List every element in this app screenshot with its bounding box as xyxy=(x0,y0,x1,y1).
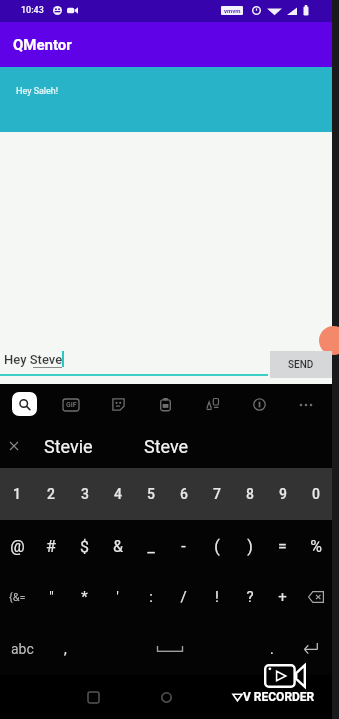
staticText: abc xyxy=(11,641,34,657)
button[interactable]: 2 xyxy=(34,468,68,520)
button[interactable]: ! xyxy=(200,572,233,622)
staticText: = xyxy=(278,537,287,556)
button[interactable]: + xyxy=(266,572,299,622)
staticText: Hey Saleh! xyxy=(16,86,59,97)
staticText: vmvm xyxy=(224,7,241,14)
button[interactable]: , xyxy=(45,622,85,675)
button[interactable]: abc xyxy=(0,622,45,675)
staticText: , xyxy=(64,641,67,657)
staticText: QMentor xyxy=(13,36,72,54)
staticText: 10:43 xyxy=(21,5,44,16)
button[interactable]: Stickers xyxy=(102,389,134,420)
button[interactable]: Home xyxy=(151,682,181,712)
button[interactable]: More options xyxy=(290,389,322,420)
staticText: ( xyxy=(214,537,220,556)
button[interactable]: $ xyxy=(68,520,101,572)
button[interactable]: * xyxy=(68,572,101,622)
button[interactable]: Backspace xyxy=(299,572,332,622)
button[interactable]: Translate xyxy=(196,389,228,420)
staticText: / xyxy=(180,588,187,606)
staticText: ) xyxy=(247,537,253,556)
staticText: 2 xyxy=(47,486,55,502)
button[interactable]: 3 xyxy=(68,468,101,520)
staticText: 9 xyxy=(279,486,287,502)
staticText: & xyxy=(113,537,123,556)
button[interactable]: ? xyxy=(233,572,266,622)
staticText: $ xyxy=(80,537,89,556)
button[interactable]: # xyxy=(34,520,68,572)
button[interactable]: 0 xyxy=(299,468,332,520)
staticText: . xyxy=(270,641,274,657)
button[interactable]: Stevie xyxy=(34,425,102,468)
staticText: @ xyxy=(10,537,25,556)
staticText: - xyxy=(181,537,186,556)
staticText: 5 xyxy=(147,486,155,502)
staticText: {&= xyxy=(9,591,26,604)
button[interactable]: {&= xyxy=(0,572,34,622)
staticText: 6 xyxy=(180,486,188,502)
button[interactable]: 4 xyxy=(101,468,134,520)
staticText: ? xyxy=(246,588,254,606)
button[interactable]: SEND xyxy=(270,351,332,378)
staticText: ' xyxy=(116,588,119,606)
button[interactable]: Profile xyxy=(319,326,339,355)
button[interactable]: 7 xyxy=(200,468,233,520)
staticText: Hey Steve xyxy=(4,352,63,367)
button[interactable]: 6 xyxy=(167,468,200,520)
staticText: Steve xyxy=(144,436,189,457)
staticText: * xyxy=(81,588,88,606)
staticText: V RECORDER xyxy=(243,690,315,704)
staticText: 0 xyxy=(312,486,320,502)
button[interactable]: : xyxy=(134,572,167,622)
button[interactable]: Clipboard xyxy=(149,389,181,420)
staticText: " xyxy=(49,588,54,606)
staticText: Stevie xyxy=(44,436,93,457)
staticText: 4 xyxy=(114,486,122,502)
staticText: GIF xyxy=(66,401,77,409)
button[interactable]: / xyxy=(167,572,200,622)
button[interactable]: @ xyxy=(0,520,34,572)
button[interactable]: Space xyxy=(85,622,255,675)
button[interactable]: & xyxy=(101,520,134,572)
button[interactable]: % xyxy=(299,520,332,572)
button[interactable]: Search xyxy=(12,392,37,416)
button[interactable]: 5 xyxy=(134,468,167,520)
button[interactable]: Enter xyxy=(288,622,332,675)
staticText: 7 xyxy=(213,486,221,502)
staticText: SEND xyxy=(288,359,314,371)
button[interactable]: Recents xyxy=(78,682,108,712)
staticText: 1 xyxy=(13,486,21,502)
staticText: # xyxy=(46,537,56,556)
staticText: ! xyxy=(215,588,219,606)
button[interactable]: ) xyxy=(233,520,266,572)
button[interactable]: - xyxy=(167,520,200,572)
button[interactable]: " xyxy=(34,572,68,622)
button[interactable]: . xyxy=(255,622,288,675)
button[interactable]: 1 xyxy=(0,468,34,520)
button[interactable]: 9 xyxy=(266,468,299,520)
button[interactable]: 8 xyxy=(233,468,266,520)
staticText: 3 xyxy=(81,486,89,502)
staticText: 8 xyxy=(246,486,254,502)
button[interactable]: ' xyxy=(101,572,134,622)
button[interactable]: Info xyxy=(243,389,275,420)
staticText: % xyxy=(310,537,322,556)
button[interactable]: Steve xyxy=(132,425,200,468)
button[interactable]: ( xyxy=(200,520,233,572)
staticText: : xyxy=(149,588,153,606)
staticText: _ xyxy=(147,537,155,556)
button[interactable]: = xyxy=(266,520,299,572)
button[interactable]: _ xyxy=(134,520,167,572)
staticText: + xyxy=(278,588,287,606)
button[interactable]: GIF xyxy=(55,389,87,420)
